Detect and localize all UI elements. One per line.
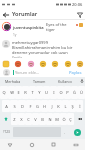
button[interactable]: juventuspinkita xyxy=(2,22,83,37)
staticText: X xyxy=(20,117,23,122)
staticText: P xyxy=(66,90,69,95)
button[interactable]: W xyxy=(8,86,15,99)
staticText: D xyxy=(21,104,24,109)
button[interactable]: Shift xyxy=(0,113,11,125)
button[interactable]: B xyxy=(39,113,46,125)
button[interactable]: İ xyxy=(76,100,83,112)
button[interactable]: E xyxy=(15,86,22,99)
staticText: Ö xyxy=(62,117,66,122)
button[interactable]: Ş xyxy=(69,100,76,112)
button[interactable]: Backspace xyxy=(74,113,85,125)
button[interactable]: Voice input xyxy=(78,77,85,85)
button[interactable]: C xyxy=(25,113,32,125)
staticText: O xyxy=(59,90,63,95)
button[interactable]: Merhaba xyxy=(0,77,26,85)
staticText: juventuspinkita xyxy=(13,25,44,30)
staticText: M xyxy=(55,117,59,122)
button[interactable]: Share xyxy=(74,9,85,20)
button[interactable]: V xyxy=(32,113,39,125)
button[interactable]: J xyxy=(48,100,55,112)
button[interactable]: I xyxy=(50,86,57,99)
button[interactable]: ?123 xyxy=(0,126,13,138)
button[interactable]: Kullanıcı xyxy=(52,77,78,85)
button[interactable]: Ö xyxy=(60,113,67,125)
button[interactable]: Back xyxy=(0,9,11,20)
staticText: F xyxy=(29,104,32,109)
staticText: J xyxy=(51,104,53,109)
button[interactable]: S xyxy=(10,100,18,112)
staticText: I xyxy=(53,90,55,95)
staticText: C xyxy=(27,117,30,122)
button[interactable]: Emoji reaction xyxy=(2,60,9,67)
staticText: Ç xyxy=(69,117,72,122)
staticText: T xyxy=(31,90,34,95)
button[interactable]: U xyxy=(43,86,50,99)
button[interactable]: Emoji reaction xyxy=(27,60,34,67)
staticText: İ xyxy=(79,104,81,109)
button[interactable]: Hide keyboard xyxy=(71,140,80,149)
staticText: U xyxy=(45,90,48,95)
staticText: 1y xyxy=(13,33,17,37)
button[interactable]: K xyxy=(55,100,62,112)
staticText: B xyxy=(41,117,44,122)
button[interactable]: N xyxy=(46,113,53,125)
button[interactable]: Emoji reaction xyxy=(14,60,21,67)
button[interactable]: Emoji reaction xyxy=(76,60,83,67)
staticText: Yorumlar xyxy=(12,10,38,18)
button[interactable]: M xyxy=(53,113,60,125)
staticText: Z xyxy=(13,117,16,122)
button[interactable]: L xyxy=(62,100,69,112)
button[interactable]: Back xyxy=(5,140,14,149)
staticText: Yanitla xyxy=(12,56,22,58)
button[interactable]: H xyxy=(41,100,48,112)
button[interactable]: T xyxy=(29,86,36,99)
button[interactable]: Home xyxy=(27,140,36,149)
button[interactable]: Ğ xyxy=(71,86,78,99)
staticText: Y xyxy=(38,90,41,95)
button[interactable]: F xyxy=(26,100,34,112)
button[interactable]: P xyxy=(64,86,71,99)
button[interactable]: D xyxy=(18,100,26,112)
button[interactable]: Emoji reaction xyxy=(51,60,58,67)
button[interactable]: Emoji reaction xyxy=(64,60,71,67)
staticText: 20:06 xyxy=(72,2,83,7)
staticText: mehmetuygar0999 Bismillahirrahmanirrahim… xyxy=(12,40,83,55)
staticText: L xyxy=(64,104,67,109)
staticText: H xyxy=(43,104,46,109)
staticText: Ü xyxy=(80,90,83,95)
staticText: Merhaba xyxy=(5,79,21,84)
button[interactable]: Ç xyxy=(67,113,74,125)
button[interactable]: Z xyxy=(11,113,18,125)
button[interactable]: Recent apps xyxy=(49,140,58,149)
staticText: Ğ xyxy=(73,90,76,95)
button[interactable]: Tamam xyxy=(26,77,52,85)
staticText: Q xyxy=(2,90,6,95)
button[interactable]: Send xyxy=(74,129,81,136)
staticText: W xyxy=(10,90,14,95)
button[interactable]: X xyxy=(18,113,25,125)
button[interactable]: mehmetuygar0999 Bismillahirrahmanirrahim… xyxy=(2,40,83,58)
button[interactable]: G xyxy=(34,100,41,112)
staticText: N xyxy=(48,117,52,122)
staticText: Tamam xyxy=(33,79,46,84)
staticText: R xyxy=(24,90,27,95)
staticText: A xyxy=(5,104,8,109)
button[interactable]: Paylas xyxy=(69,70,82,75)
button[interactable]: R xyxy=(22,86,29,99)
button[interactable]: O xyxy=(57,86,64,99)
button[interactable]: A xyxy=(2,100,10,112)
staticText: S xyxy=(13,104,16,109)
button[interactable]: Ü xyxy=(78,86,85,99)
button[interactable]: Y xyxy=(36,86,43,99)
staticText: G xyxy=(36,104,39,109)
staticText: ?123 xyxy=(3,130,10,134)
staticText: V xyxy=(34,117,37,122)
staticText: Yorum ekle... xyxy=(15,70,69,75)
staticText: E xyxy=(17,90,20,95)
button[interactable]: Emoji reaction xyxy=(39,60,46,67)
staticText: Kullanıcı xyxy=(58,79,73,84)
staticText: K xyxy=(57,104,60,109)
button[interactable]: Q xyxy=(0,86,8,99)
